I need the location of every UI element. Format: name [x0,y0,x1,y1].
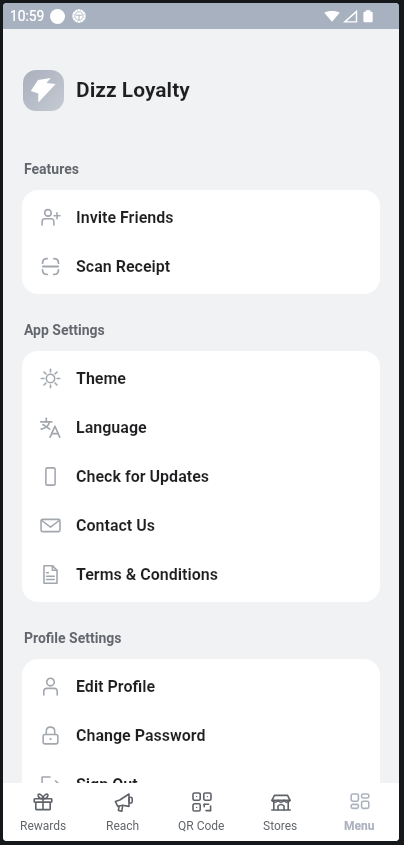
staticText: Terms & Conditions [76,565,218,584]
staticText: Language [76,418,147,437]
staticText: Rewards [20,819,67,833]
button[interactable]: Contact Us [22,501,380,550]
staticText: Stores [263,819,298,833]
staticText: Scan Receipt [76,257,171,276]
button[interactable]: Invite Friends [22,193,380,242]
button[interactable]: Scan Receipt [22,242,380,291]
button[interactable]: Edit Profile [22,662,380,711]
button[interactable]: Theme [22,354,380,403]
button[interactable]: Check for Updates [22,452,380,501]
staticText: Invite Friends [76,208,174,227]
staticText: Contact Us [76,516,155,535]
button[interactable]: Language [22,403,380,452]
staticText: Dizz Loyalty [76,78,190,103]
button[interactable]: Change Password [22,711,380,760]
other: Stores [271,792,291,812]
other: Menu [350,792,370,812]
button[interactable]: QR Code [162,783,241,841]
staticText: QR Code [178,819,225,833]
other: QR Code [192,792,212,812]
button[interactable]: Menu [320,783,399,841]
button[interactable]: Sign Out [22,760,380,809]
button[interactable]: Rewards [3,783,83,841]
staticText: Menu [344,819,375,833]
other: Rewards [33,792,53,812]
staticText: Edit Profile [76,677,156,696]
other: Reach [113,792,133,812]
button[interactable]: Stores [241,783,320,841]
staticText: Features [24,161,79,177]
staticText: Sign Out [76,775,138,794]
staticText: 10:59 [10,8,45,24]
staticText: Change Password [76,726,206,745]
staticText: Check for Updates [76,467,210,486]
button[interactable]: Reach [83,783,162,841]
staticText: Reach [106,819,140,833]
staticText: App Settings [24,322,105,338]
button[interactable]: Terms & Conditions [22,550,380,599]
staticText: Theme [76,369,127,388]
staticText: Profile Settings [24,630,122,646]
